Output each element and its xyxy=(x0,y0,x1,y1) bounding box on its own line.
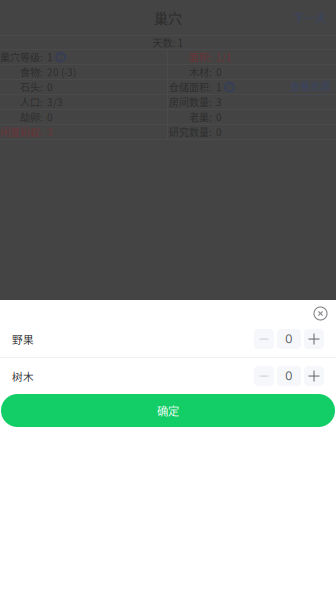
button[interactable]: Decrease xyxy=(254,366,274,386)
button[interactable]: Increase xyxy=(304,329,324,349)
staticText: 木材: xyxy=(189,65,212,79)
staticText: 3 xyxy=(47,125,53,139)
staticText: 仓储面积: xyxy=(169,80,212,94)
staticText: 3 xyxy=(216,95,222,109)
staticText: 人口: xyxy=(20,95,43,109)
staticText: ? xyxy=(58,52,62,62)
staticText: 确定 xyxy=(157,402,179,419)
staticText: 巢穴 xyxy=(154,7,182,28)
button[interactable]: Close xyxy=(314,301,336,320)
staticText: 面积: xyxy=(189,50,212,64)
staticText: 3/3 xyxy=(47,95,63,109)
staticText: 1 xyxy=(216,80,222,94)
button[interactable]: 查看资源 xyxy=(290,80,336,94)
staticText: 石头: xyxy=(20,80,43,94)
staticText: 树木 xyxy=(12,368,34,384)
staticText: 1 xyxy=(47,50,53,64)
staticText: ? xyxy=(227,82,231,92)
button[interactable]: 确定 xyxy=(1,394,335,427)
staticText: 房间数量: xyxy=(169,95,212,109)
staticText: 0 xyxy=(47,110,53,124)
staticText: 劫卵: xyxy=(20,110,43,124)
staticText: 20 (-3) xyxy=(47,65,76,79)
staticText: 下一天 xyxy=(293,9,326,26)
staticText: 食物: xyxy=(20,65,43,79)
button[interactable]: Increase xyxy=(304,366,324,386)
staticText: 野果 xyxy=(12,331,34,347)
button[interactable]: 下一天 xyxy=(293,1,336,34)
staticText: 0 xyxy=(285,369,293,383)
staticText: 巢穴等级: xyxy=(0,50,43,64)
staticText: 0 xyxy=(47,80,53,94)
staticText: 研究数量: xyxy=(169,125,212,139)
staticText: 闲置蚂蚁: xyxy=(0,125,43,139)
staticText: 天数: 1 xyxy=(152,35,183,50)
staticText: 0 xyxy=(216,125,222,139)
staticText: 0 xyxy=(216,110,222,124)
staticText: 0 xyxy=(285,332,293,346)
staticText: 老巢: xyxy=(189,110,212,124)
staticText: 0 xyxy=(216,65,222,79)
staticText: 1/1 xyxy=(216,50,232,64)
staticText: 查看资源 xyxy=(290,79,330,93)
button[interactable]: Decrease xyxy=(254,329,274,349)
